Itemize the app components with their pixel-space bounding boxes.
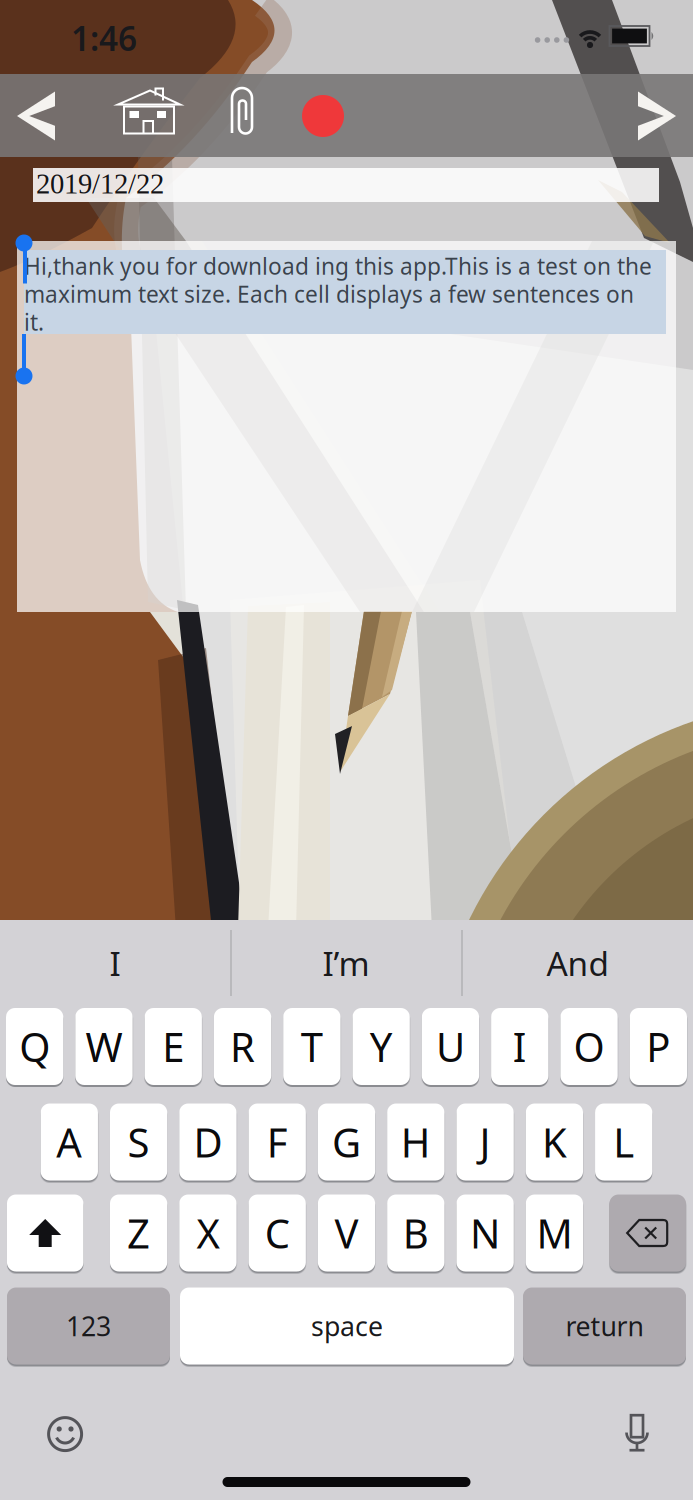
- staticText: F: [267, 1115, 288, 1168]
- button[interactable]: N: [456, 1194, 514, 1271]
- staticText: W: [85, 1020, 122, 1073]
- button[interactable]: D: [179, 1103, 236, 1180]
- button[interactable]: V: [318, 1194, 375, 1271]
- staticText: return: [565, 1308, 643, 1344]
- button[interactable]: A: [41, 1103, 98, 1180]
- button[interactable]: Delete: [609, 1194, 686, 1271]
- staticText: S: [128, 1115, 150, 1168]
- staticText: U: [436, 1020, 465, 1073]
- staticText: Hi,thank you for download ing this app.T…: [24, 251, 652, 281]
- staticText: T: [301, 1020, 323, 1073]
- button[interactable]: C: [248, 1194, 306, 1271]
- button[interactable]: K: [526, 1103, 583, 1180]
- staticText: N: [470, 1206, 500, 1259]
- staticText: 1:46: [71, 16, 137, 60]
- button[interactable]: And: [465, 923, 690, 1003]
- button[interactable]: M: [526, 1194, 583, 1271]
- staticText: H: [401, 1115, 431, 1168]
- button[interactable]: Y: [352, 1008, 410, 1085]
- staticText: V: [334, 1206, 358, 1259]
- button[interactable]: Q: [6, 1008, 63, 1085]
- staticText: K: [542, 1115, 567, 1168]
- button[interactable]: L: [595, 1103, 652, 1180]
- button[interactable]: W: [75, 1008, 133, 1085]
- staticText: C: [265, 1206, 290, 1259]
- staticText: I: [109, 941, 120, 985]
- button[interactable]: S: [110, 1103, 167, 1180]
- button[interactable]: I: [2, 923, 227, 1003]
- button[interactable]: T: [283, 1008, 340, 1085]
- button[interactable]: B: [387, 1194, 444, 1271]
- staticText: X: [196, 1206, 219, 1259]
- staticText: Q: [19, 1020, 50, 1073]
- staticText: P: [646, 1020, 670, 1073]
- button[interactable]: Attach: [230, 87, 256, 143]
- staticText: it.: [24, 307, 44, 337]
- button[interactable]: O: [560, 1008, 618, 1085]
- button[interactable]: Record: [302, 95, 344, 137]
- button[interactable]: return: [523, 1287, 686, 1364]
- staticText: B: [403, 1206, 429, 1259]
- staticText: Y: [370, 1020, 393, 1073]
- staticText: L: [613, 1115, 634, 1168]
- button[interactable]: Home: [117, 87, 181, 134]
- button[interactable]: U: [422, 1008, 479, 1085]
- staticText: R: [230, 1020, 255, 1073]
- staticText: space: [311, 1308, 383, 1344]
- staticText: I: [513, 1020, 527, 1073]
- button[interactable]: Back: [17, 91, 55, 140]
- staticText: I’m: [322, 941, 369, 985]
- staticText: A: [56, 1115, 82, 1168]
- button[interactable]: Z: [110, 1194, 167, 1271]
- staticText: 123: [66, 1308, 111, 1344]
- button[interactable]: J: [456, 1103, 514, 1180]
- staticText: And: [546, 941, 609, 985]
- staticText: D: [193, 1115, 222, 1168]
- staticText: Z: [127, 1206, 150, 1259]
- button[interactable]: G: [318, 1103, 375, 1180]
- button[interactable]: Forward: [638, 91, 676, 140]
- button[interactable]: Dictation: [623, 1414, 650, 1452]
- button[interactable]: I’m: [233, 923, 458, 1003]
- button[interactable]: 123: [7, 1287, 170, 1364]
- staticText: J: [480, 1115, 491, 1168]
- button[interactable]: Shift: [7, 1194, 83, 1271]
- staticText: 2019/12/22: [36, 168, 164, 200]
- staticText: G: [332, 1115, 361, 1168]
- button[interactable]: P: [630, 1008, 687, 1085]
- button[interactable]: H: [387, 1103, 444, 1180]
- button[interactable]: F: [248, 1103, 306, 1180]
- button[interactable]: Emoji: [47, 1416, 83, 1452]
- button[interactable]: space: [180, 1287, 514, 1364]
- button[interactable]: R: [214, 1008, 271, 1085]
- staticText: M: [536, 1206, 572, 1259]
- button[interactable]: X: [179, 1194, 236, 1271]
- button[interactable]: I: [491, 1008, 548, 1085]
- staticText: maximum text size. Each cell displays a …: [24, 279, 634, 309]
- button[interactable]: E: [145, 1008, 202, 1085]
- staticText: E: [162, 1020, 184, 1073]
- staticText: O: [573, 1020, 604, 1073]
